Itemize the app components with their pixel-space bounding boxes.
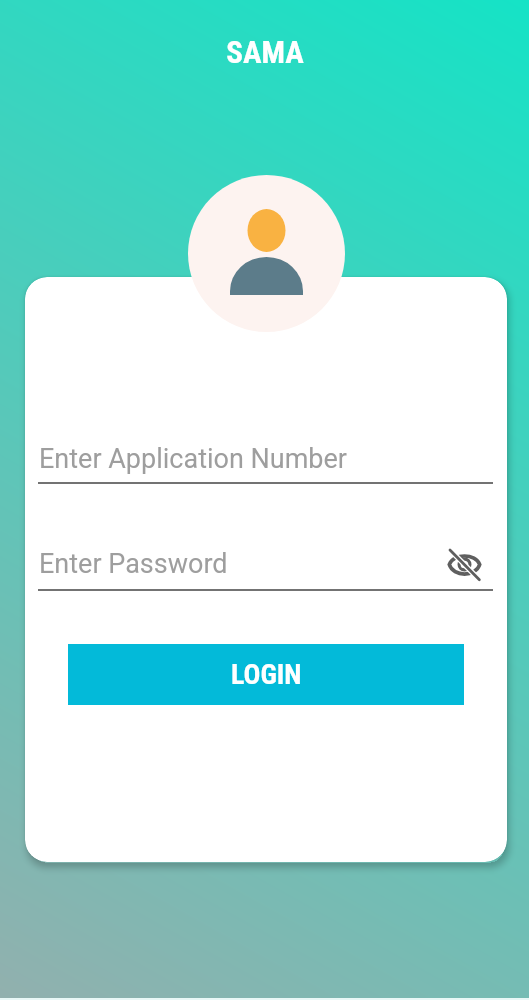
button[interactable]: SAMA [0,30,529,74]
other: User avatar [188,175,345,332]
staticText: Enter Application Number [39,443,347,475]
button[interactable]: Show password [439,539,489,589]
staticText: SAMA [226,34,304,70]
staticText: Enter Password [39,548,228,580]
button[interactable]: Enter Application Number [38,437,493,484]
button[interactable]: Enter Password [38,542,493,591]
staticText: LOGIN [231,658,302,691]
button[interactable]: LOGIN [68,644,464,705]
